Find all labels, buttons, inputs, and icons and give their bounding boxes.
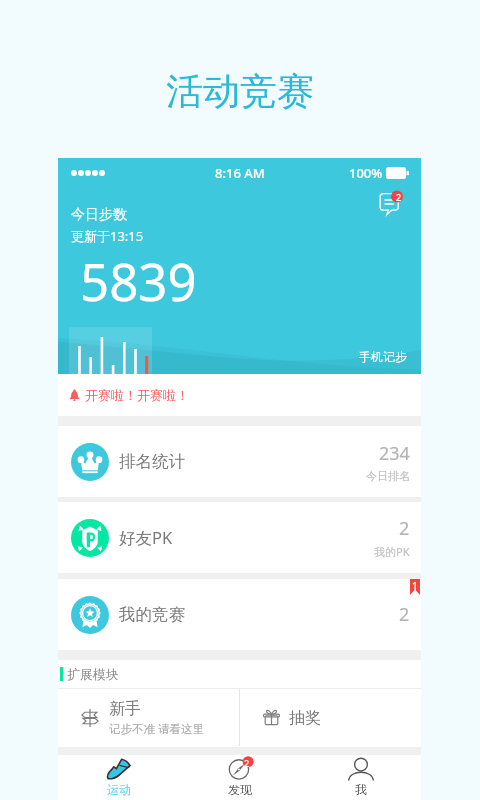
staticText: 我的竞赛 bbox=[119, 604, 185, 625]
button[interactable]: 我的竞赛 bbox=[58, 579, 421, 650]
staticText: 排名统计 bbox=[119, 451, 185, 472]
staticText: 手机记步 bbox=[359, 349, 407, 364]
staticText: 2 bbox=[399, 602, 410, 627]
button[interactable]: 运动 bbox=[58, 755, 179, 800]
staticText: 运动 bbox=[107, 782, 131, 797]
staticText: 100% bbox=[349, 164, 383, 182]
staticText: 1 bbox=[412, 579, 418, 593]
staticText: 好友PK bbox=[119, 526, 173, 549]
button[interactable]: 好友PK bbox=[58, 502, 421, 573]
staticText: 更新于13:15 bbox=[71, 227, 144, 245]
staticText: 今日步数 bbox=[71, 206, 127, 224]
staticText: 2 bbox=[244, 757, 250, 769]
button[interactable]: 抽奖 bbox=[240, 689, 421, 746]
button[interactable]: 开赛啦！开赛啦！ bbox=[58, 374, 421, 416]
staticText: 今日排名 bbox=[366, 469, 410, 483]
button[interactable]: Messages bbox=[378, 190, 408, 220]
button[interactable]: 我 bbox=[300, 755, 421, 800]
button[interactable]: 2 bbox=[179, 755, 300, 800]
staticText: 抽奖 bbox=[289, 708, 321, 728]
staticText: 234 bbox=[379, 441, 410, 466]
staticText: 活动竞赛 bbox=[166, 68, 314, 115]
staticText: 记步不准 请看这里 bbox=[109, 721, 204, 737]
staticText: 我 bbox=[355, 782, 367, 797]
staticText: 发现 bbox=[228, 782, 252, 797]
staticText: 2 bbox=[399, 516, 410, 541]
staticText: 5839 bbox=[80, 246, 197, 315]
staticText: 开赛啦！开赛啦！ bbox=[85, 387, 189, 403]
staticText: 新手 bbox=[109, 699, 141, 719]
button[interactable]: 排名统计 bbox=[58, 426, 421, 497]
button[interactable]: 新手 bbox=[58, 689, 239, 746]
staticText: 8:16 AM bbox=[215, 164, 265, 182]
staticText: 2 bbox=[396, 191, 402, 203]
staticText: 我的PK bbox=[374, 544, 410, 559]
staticText: 扩展模块 bbox=[67, 666, 119, 682]
